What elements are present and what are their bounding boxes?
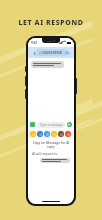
button[interactable]: Apps [30,122,35,127]
button[interactable] [42,159,68,162]
staticText: AI will respond to: [32,152,58,156]
button[interactable]: +13245678900 [39,50,63,55]
staticText: Copy an iMessage for AI reply [32,141,70,149]
button[interactable]: App 0 [30,131,36,137]
button[interactable]: Back [31,50,37,56]
staticText: LET AI RESPOND [18,18,84,28]
staticText: +13245678900 [39,50,63,55]
button[interactable]: App 3 [51,131,57,137]
button[interactable]: App 4 [58,131,64,137]
button[interactable]: App 2 [44,131,50,137]
button[interactable]: App 5 [65,131,71,137]
button[interactable]: Type a message... [37,122,65,128]
button[interactable]: Send [67,122,72,127]
staticText: 9:41 [31,41,38,45]
button[interactable] [33,63,62,66]
button[interactable]: Video call [65,50,71,56]
button[interactable]: App 1 [37,131,43,137]
staticText: Type a message... [40,123,65,127]
